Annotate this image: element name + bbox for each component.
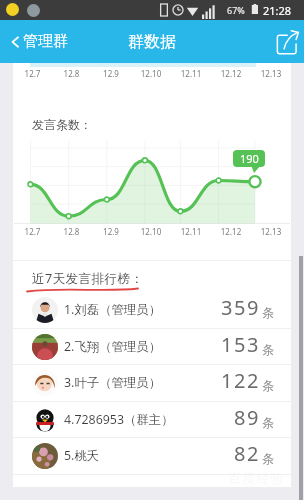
staticText: 122: [221, 367, 260, 394]
staticText: 12.9: [91, 68, 131, 79]
staticText: 条: [262, 378, 274, 393]
staticText: 89: [234, 404, 260, 431]
staticText: 82: [234, 440, 260, 467]
staticText: 12.7: [13, 68, 52, 79]
button[interactable]: 4.7286953（群主）: [13, 401, 291, 438]
staticText: 21:28: [263, 3, 292, 18]
staticText: 1.刘磊（管理员）: [64, 301, 162, 318]
staticText: 近7天发言排行榜：: [32, 270, 144, 287]
staticText: 12.13: [251, 226, 291, 237]
staticText: 12.10: [131, 226, 171, 237]
staticText: 条: [262, 342, 274, 357]
staticText: 4.7286953（群主）: [64, 411, 174, 428]
staticText: 3.叶子（管理员）: [64, 374, 162, 391]
staticText: 12.12: [211, 226, 251, 237]
staticText: 管理群: [23, 32, 68, 51]
staticText: 12.7: [13, 226, 52, 237]
staticText: 12.11: [171, 68, 211, 79]
staticText: 12.9: [91, 226, 131, 237]
staticText: 群数据: [128, 32, 176, 52]
staticText: 153: [221, 331, 260, 358]
staticText: 359: [221, 294, 260, 321]
button[interactable]: 3.叶子（管理员）: [13, 364, 291, 401]
staticText: 12.8: [52, 226, 91, 237]
staticText: 12.13: [251, 68, 291, 79]
staticText: 百度经验: [228, 470, 284, 486]
button[interactable]: 管理群: [8, 20, 99, 63]
staticText: 5.桃夭: [64, 447, 100, 464]
staticText: 67%: [227, 4, 245, 16]
button[interactable]: Share: [268, 20, 304, 63]
staticText: 12.8: [52, 68, 91, 79]
staticText: 12.10: [131, 68, 171, 79]
staticText: 条: [262, 305, 274, 320]
staticText: 2.飞翔（管理员）: [64, 338, 162, 355]
staticText: 12.12: [211, 68, 251, 79]
staticText: 发言条数：: [32, 117, 92, 132]
button[interactable]: 5.桃夭: [13, 437, 291, 474]
staticText: 190: [240, 151, 259, 166]
button[interactable]: 1.刘磊（管理员）: [13, 291, 291, 328]
staticText: 条: [262, 451, 274, 466]
button[interactable]: 2.飞翔（管理员）: [13, 328, 291, 365]
staticText: 条: [262, 415, 274, 430]
staticText: 12.11: [171, 226, 211, 237]
